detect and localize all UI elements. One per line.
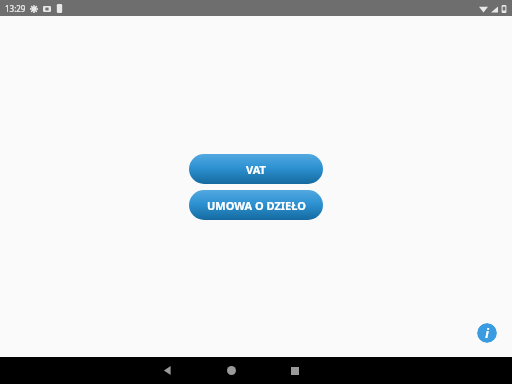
staticText: UMOWA O DZIEŁO — [207, 198, 306, 213]
staticText: VAT — [246, 162, 266, 177]
button[interactable]: Back — [145, 357, 189, 384]
staticText: 13:29 — [5, 3, 26, 14]
button[interactable]: Recents — [273, 357, 317, 384]
button[interactable]: Home — [209, 357, 253, 384]
staticText: i — [485, 325, 489, 341]
button[interactable]: UMOWA O DZIEŁO — [189, 190, 323, 220]
button[interactable]: Info — [477, 323, 497, 343]
button[interactable]: VAT — [189, 154, 323, 184]
